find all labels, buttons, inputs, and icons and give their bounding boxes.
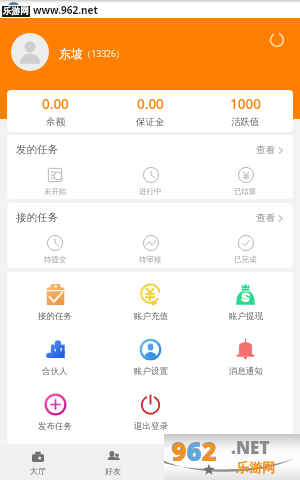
staticText: 0.00	[42, 95, 69, 113]
staticText: 好友	[105, 466, 121, 476]
staticText: 消息	[180, 466, 196, 476]
staticText: 已结算	[234, 187, 257, 196]
staticText: 接的任务	[38, 311, 72, 322]
button[interactable]: 查看	[256, 144, 285, 156]
staticText: 我的	[255, 466, 271, 476]
button[interactable]: 待审核	[103, 232, 198, 268]
button[interactable]: 合伙人	[7, 327, 103, 382]
staticText: 查看	[256, 212, 275, 224]
button[interactable]: 账户设置	[103, 327, 198, 382]
staticText: 东坡	[59, 46, 83, 61]
button[interactable]: 账户提现	[198, 272, 293, 327]
staticText: 待提交	[44, 255, 67, 264]
staticText: 保证金	[136, 116, 165, 128]
staticText: （13326）	[83, 48, 125, 60]
staticText: 消息通知	[229, 366, 263, 377]
staticText: 乐游网	[3, 6, 29, 17]
staticText: 已完成	[234, 255, 257, 264]
button[interactable]: 头像	[11, 33, 49, 71]
staticText: 进行中	[139, 187, 162, 196]
staticText: 退出登录	[134, 421, 168, 432]
staticText: 0.00	[137, 95, 164, 113]
staticText: 活跃值	[231, 116, 260, 128]
staticText: 余额	[46, 116, 65, 128]
staticText: 查看	[256, 144, 275, 156]
staticText: 账户提现	[229, 311, 263, 322]
staticText: 大厅	[30, 466, 46, 476]
staticText: 未开始	[44, 187, 67, 196]
staticText: 9	[172, 434, 187, 468]
button[interactable]: 未开始	[7, 164, 103, 199]
staticText: 待审核	[139, 255, 162, 264]
button[interactable]: 接的任务	[7, 272, 103, 327]
button[interactable]: 查看	[256, 212, 285, 224]
staticText: .NET	[231, 436, 270, 459]
staticText: 发布任务	[38, 421, 72, 432]
staticText: www.962.net	[33, 3, 98, 17]
button[interactable]: 1000	[198, 90, 293, 132]
staticText: 乐游网	[236, 459, 275, 475]
button[interactable]: 消息通知	[198, 327, 293, 382]
staticText: 6	[187, 434, 202, 468]
staticText: 接的任务	[16, 211, 58, 224]
staticText: 账户设置	[134, 366, 168, 377]
button[interactable]: 消息	[150, 446, 225, 480]
button[interactable]: 我的	[225, 446, 300, 480]
button[interactable]: 退出登录	[103, 382, 198, 437]
staticText: 2	[202, 434, 217, 468]
staticText: 962	[171, 433, 217, 468]
button[interactable]: 0.00	[103, 90, 198, 132]
staticText: 账户充值	[134, 311, 168, 322]
button[interactable]: 进行中	[103, 164, 198, 199]
button[interactable]: 刷新	[265, 28, 289, 52]
button[interactable]: 0.00	[7, 90, 103, 132]
staticText: 1000	[230, 95, 261, 113]
button[interactable]: 已结算	[198, 164, 293, 199]
button[interactable]: 已完成	[198, 232, 293, 268]
button[interactable]: 账户充值	[103, 272, 198, 327]
button[interactable]: 待提交	[7, 232, 103, 268]
staticText: 发的任务	[16, 143, 58, 156]
staticText: 合伙人	[42, 366, 68, 377]
button[interactable]: 好友	[75, 446, 150, 480]
button[interactable]: 大厅	[0, 446, 75, 480]
button[interactable]: 发布任务	[7, 382, 103, 437]
